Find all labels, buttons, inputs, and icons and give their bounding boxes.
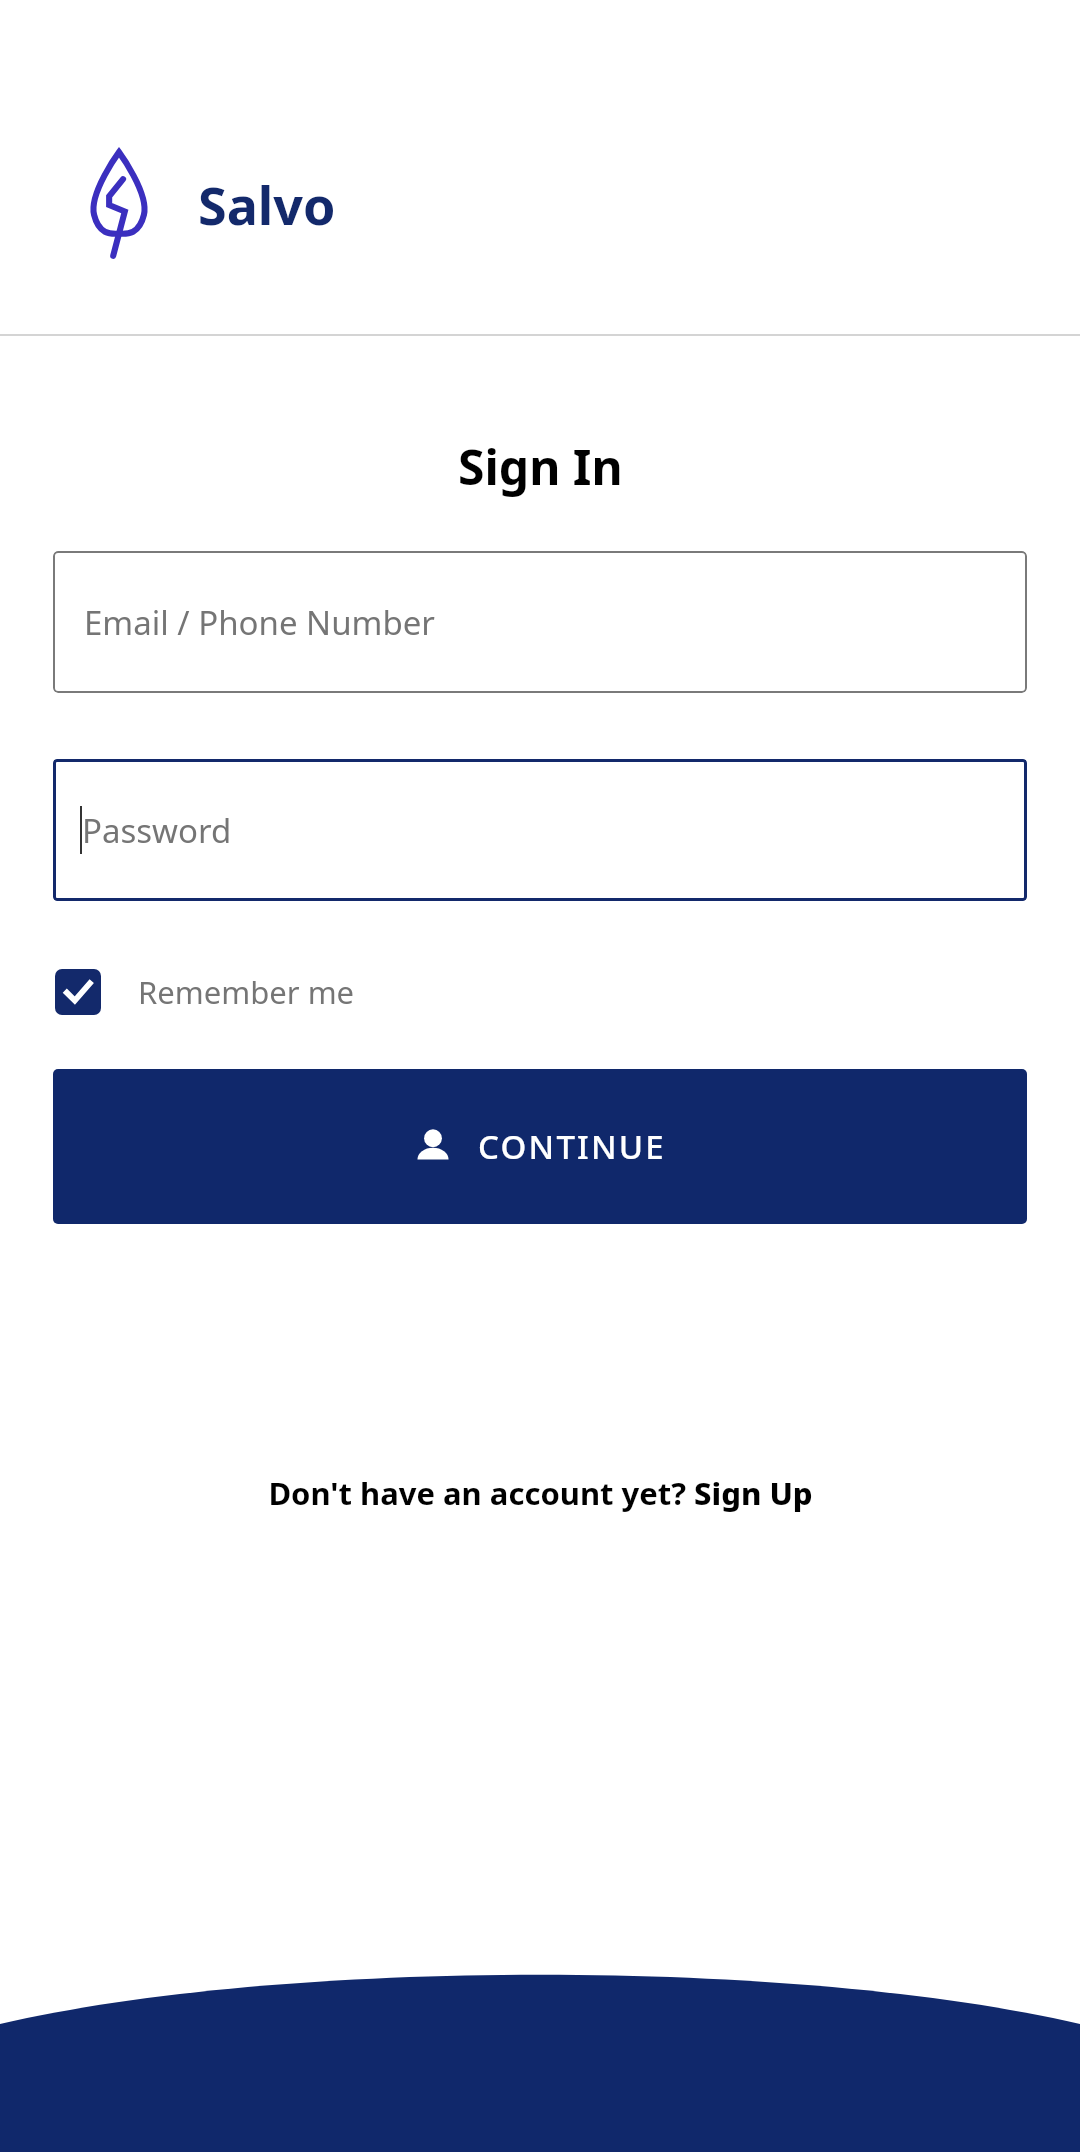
button[interactable]: Email / Phone Number <box>53 551 1027 693</box>
staticText: CONTINUE <box>478 1124 666 1169</box>
staticText: Password <box>82 808 232 853</box>
other: Account <box>414 1128 452 1166</box>
staticText: Salvo <box>198 169 336 240</box>
button[interactable]: Remember me <box>50 959 360 1025</box>
staticText: Sign In <box>458 434 623 499</box>
button[interactable]: Account <box>53 1069 1027 1224</box>
button[interactable]: Password <box>53 759 1027 901</box>
staticText: Email / Phone Number <box>84 600 435 645</box>
button[interactable]: Don't have an account yet? Sign Up <box>0 1472 1080 1514</box>
staticText: Remember me <box>138 971 355 1013</box>
staticText: Don't have an account yet? Sign Up <box>268 1472 813 1514</box>
